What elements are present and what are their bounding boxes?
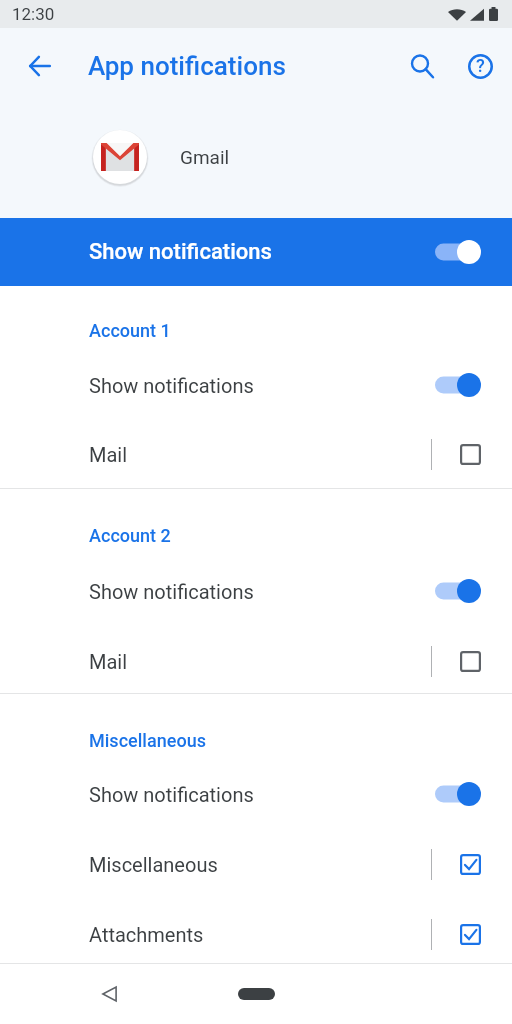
button[interactable]: Home: [226, 978, 286, 1010]
button[interactable]: Attachments: [0, 900, 512, 968]
button[interactable]: Mail checkbox: [453, 644, 487, 678]
button[interactable]: Show notifications: [0, 218, 512, 286]
staticText: Account 1: [89, 320, 171, 341]
button[interactable]: Back: [18, 44, 62, 88]
button[interactable]: Show notifications: [0, 351, 512, 419]
staticText: 12:30: [12, 4, 55, 24]
staticText: Gmail: [180, 146, 230, 168]
button[interactable]: Show notifications: [0, 557, 512, 625]
staticText: Attachments: [89, 923, 204, 946]
button[interactable]: Mail checkbox: [453, 437, 487, 471]
staticText: App notifications: [88, 51, 286, 81]
button[interactable]: Search: [400, 44, 444, 88]
staticText: Show notifications: [89, 374, 254, 397]
button[interactable]: Help: [458, 44, 502, 88]
button[interactable]: Attachments checkbox: [453, 917, 487, 951]
staticText: Show notifications: [89, 783, 254, 806]
button[interactable]: Back: [89, 974, 129, 1014]
staticText: ?: [476, 55, 485, 76]
staticText: Miscellaneous: [89, 853, 218, 876]
staticText: Show notifications: [89, 580, 254, 603]
button[interactable]: Mail: [0, 420, 512, 488]
button[interactable]: Show notifications: [0, 760, 512, 828]
staticText: Mail: [89, 443, 128, 466]
staticText: Mail: [89, 650, 128, 673]
button[interactable]: Mail: [0, 627, 512, 695]
staticText: Account 2: [89, 525, 171, 546]
staticText: Show notifications: [89, 239, 272, 265]
button[interactable]: Miscellaneous checkbox: [453, 847, 487, 881]
staticText: Miscellaneous: [89, 730, 206, 751]
button[interactable]: Miscellaneous: [0, 830, 512, 898]
